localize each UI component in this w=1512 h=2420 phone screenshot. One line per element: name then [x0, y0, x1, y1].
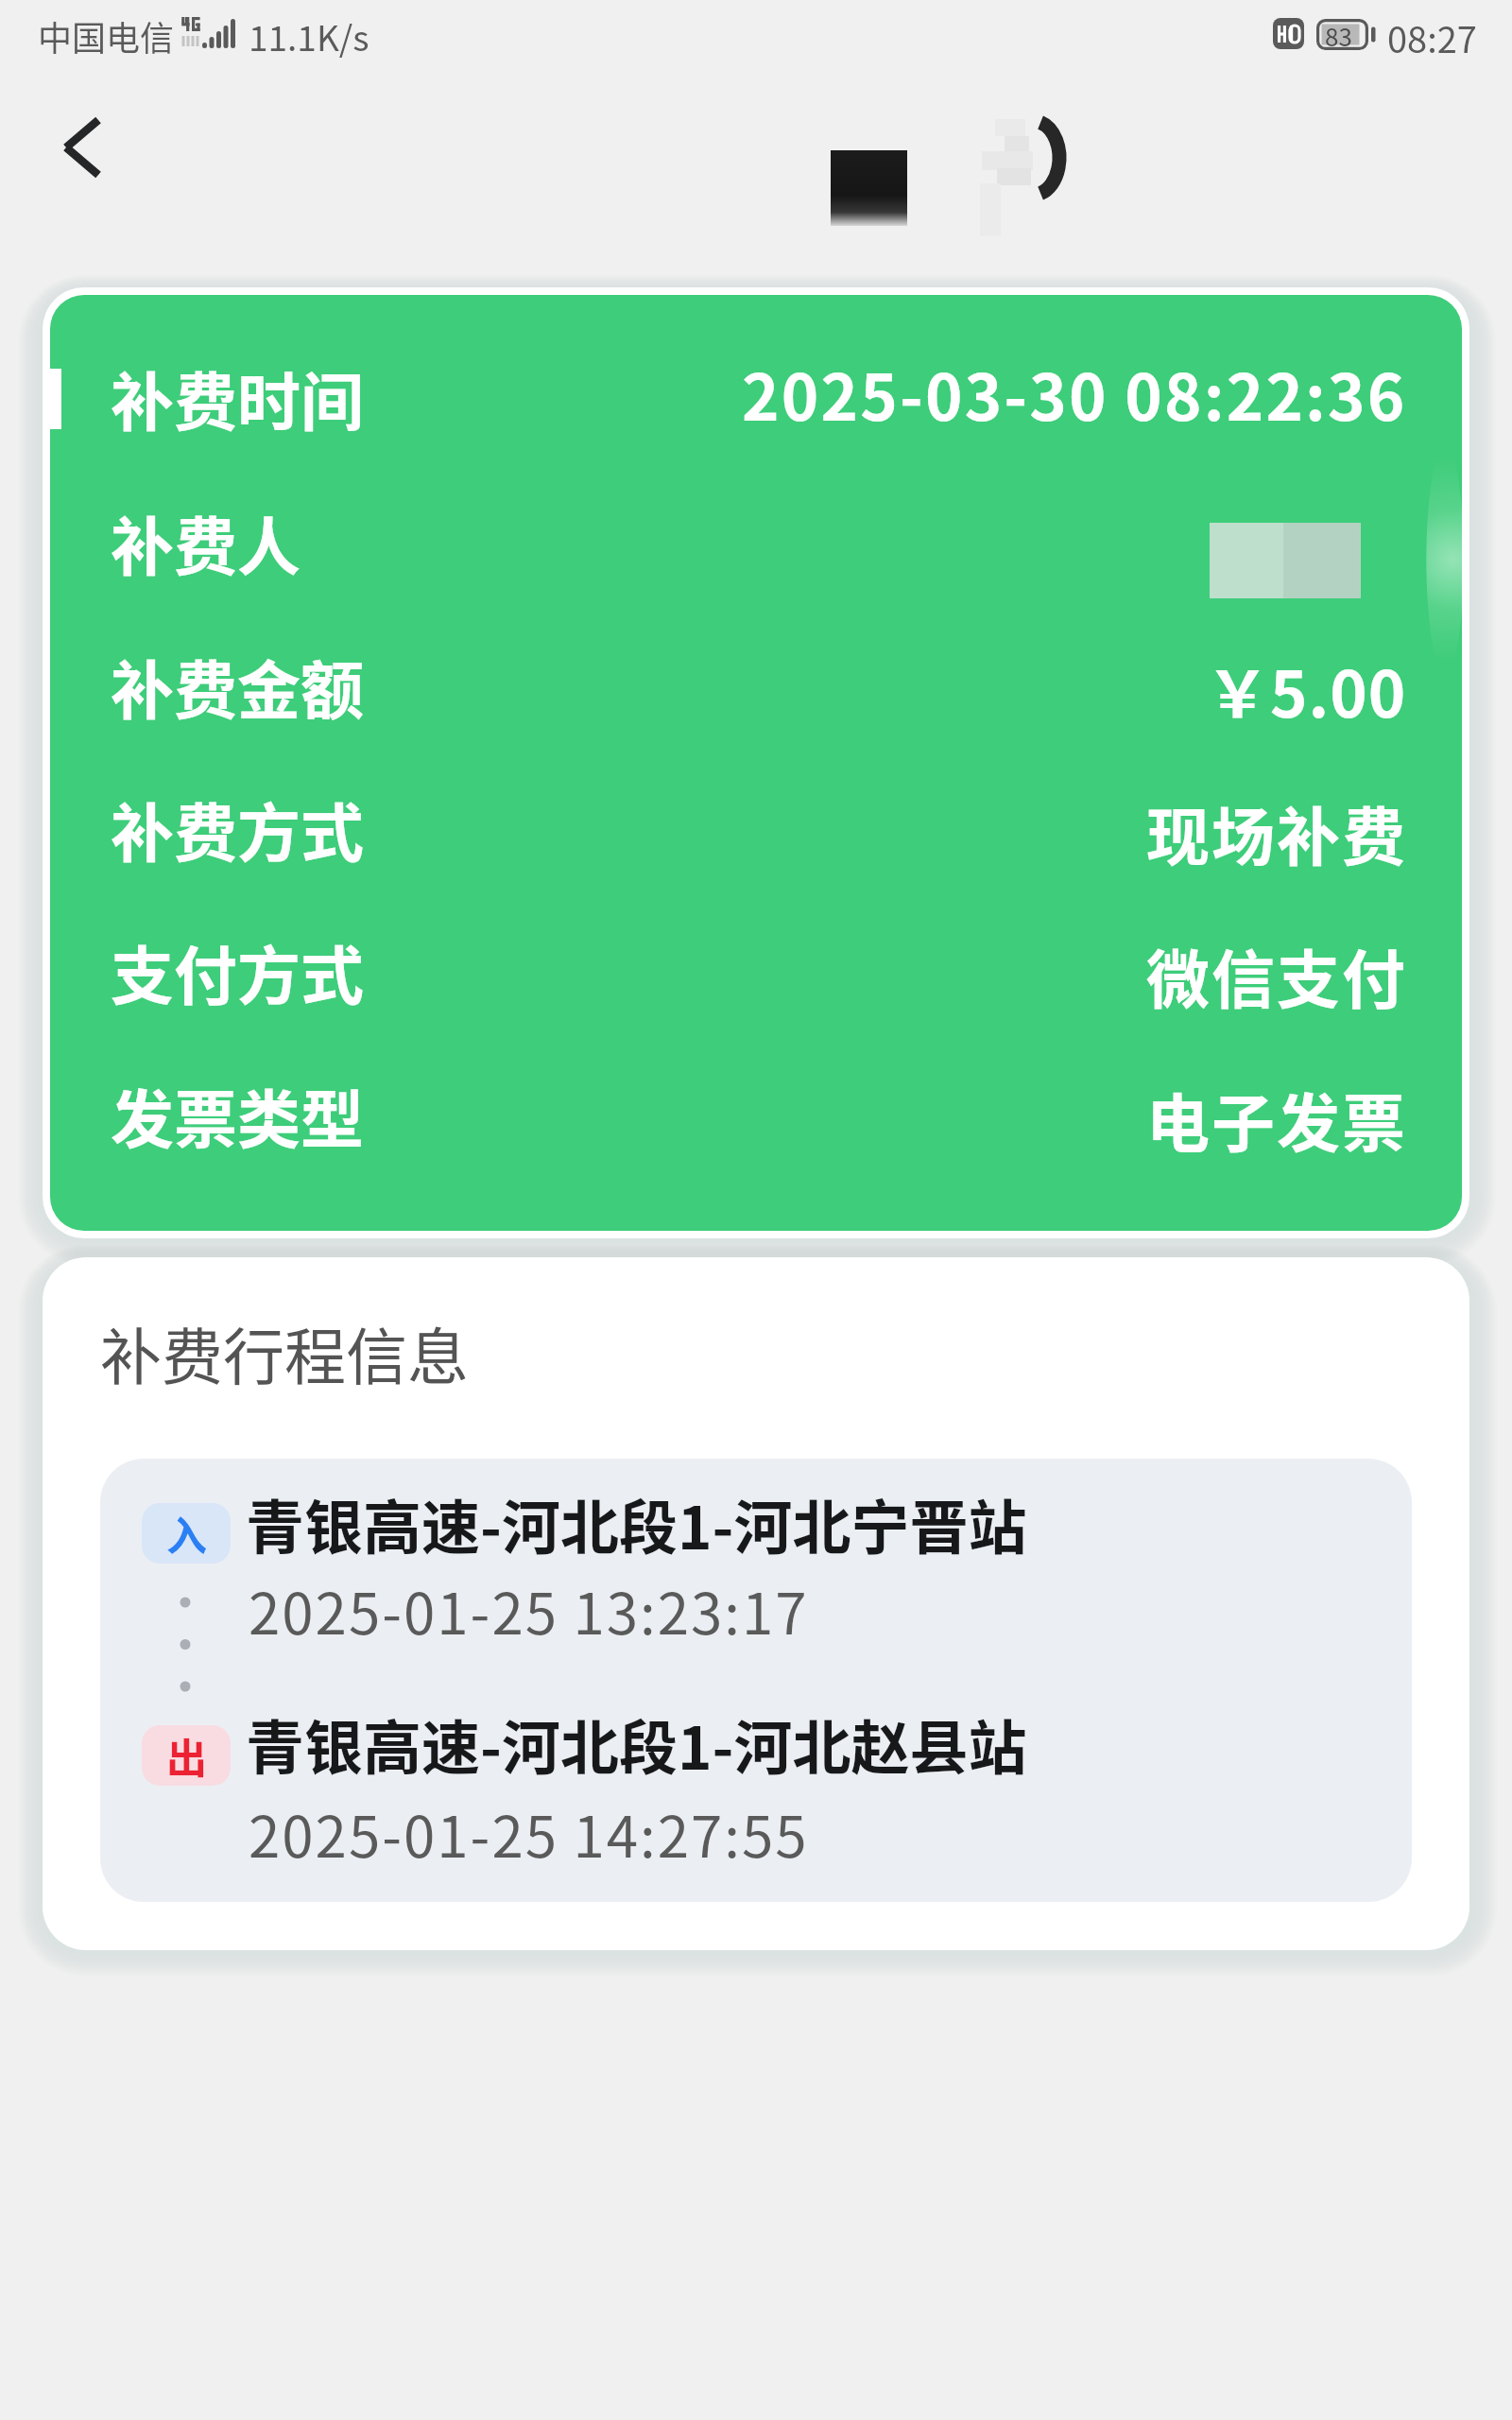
button[interactable]: 入 [100, 1459, 1412, 1902]
staticText: 电子发票 [1146, 1073, 1407, 1165]
staticText: 11.1K/s [249, 10, 369, 61]
staticText: 入 [166, 1504, 207, 1563]
staticText: 2025-01-25 14:27:55 [249, 1791, 809, 1874]
staticText: 补费时间 [111, 352, 364, 443]
button[interactable]: 补费人 [50, 497, 1462, 594]
staticText: 补费行程信息 [100, 1308, 470, 1397]
staticText: 现场补费 [1146, 786, 1407, 878]
staticText: 2025-01-25 13:23:17 [249, 1568, 809, 1651]
staticText: 08:27 [1387, 11, 1477, 63]
staticText: 2025-03-30 08:22:36 [742, 347, 1407, 439]
button[interactable]: 支付方式 [50, 926, 1462, 1023]
button[interactable]: 补费时间 [50, 295, 1462, 1231]
staticText: 微信支付 [1146, 929, 1407, 1021]
button[interactable]: 补费金额 [50, 641, 1462, 737]
button[interactable]: Back [21, 98, 144, 221]
staticText: 83 [1325, 18, 1352, 49]
button[interactable]: 发票类型 [50, 1070, 1462, 1167]
button[interactable]: 补费时间 [50, 353, 1462, 449]
staticText: ￥5.00 [1206, 644, 1407, 735]
staticText: 中国电信 [38, 11, 175, 60]
button[interactable]: 补费方式 [50, 784, 1462, 880]
staticText: 支付方式 [111, 925, 364, 1017]
staticText: 补费金额 [111, 640, 364, 732]
staticText: 青银高速-河北段1-河北赵县站 [246, 1702, 1027, 1787]
staticText: 补费人 [111, 496, 301, 588]
staticText: 补费方式 [111, 783, 364, 874]
staticText: 青银高速-河北段1-河北宁晋站 [246, 1481, 1027, 1566]
staticText: 出 [166, 1726, 207, 1785]
staticText: 发票类型 [111, 1069, 364, 1161]
